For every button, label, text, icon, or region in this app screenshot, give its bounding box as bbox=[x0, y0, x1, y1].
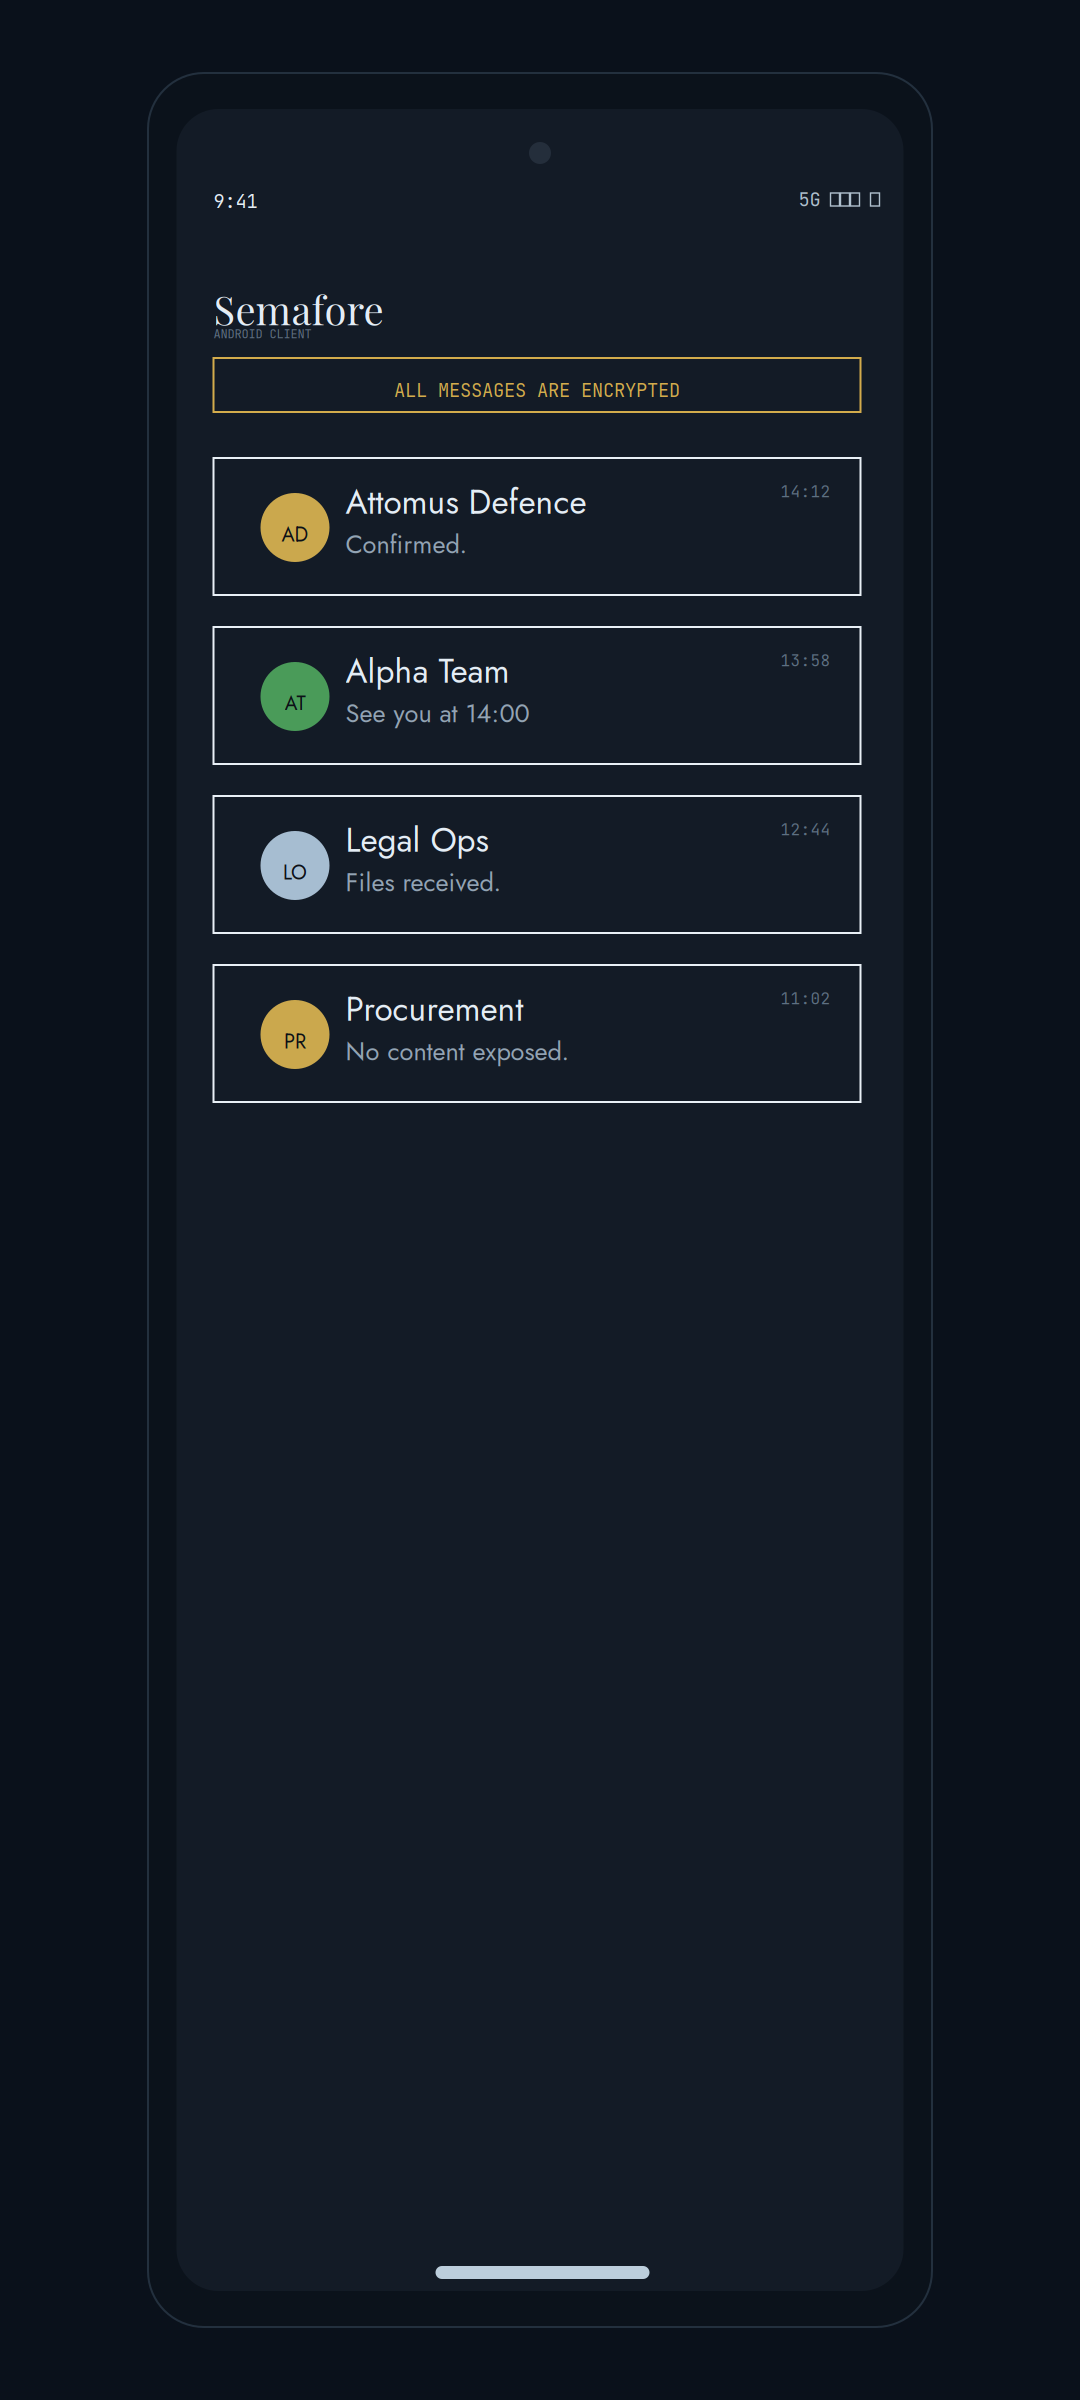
staticText: Attomus Defence bbox=[345, 478, 586, 526]
staticText: Semafore bbox=[213, 282, 383, 335]
button[interactable]: LO bbox=[213, 796, 860, 933]
staticText: ALL MESSAGES ARE ENCRYPTED bbox=[394, 378, 680, 403]
staticText: 11:02 bbox=[780, 988, 830, 1009]
staticText: See you at 14:00 bbox=[345, 695, 529, 732]
staticText: AD bbox=[281, 520, 308, 549]
staticText: 12:44 bbox=[780, 819, 830, 840]
staticText: 5G bbox=[798, 187, 820, 212]
staticText: 13:58 bbox=[780, 650, 830, 671]
button[interactable]: AT bbox=[213, 627, 860, 764]
staticText: 9:41 bbox=[213, 189, 257, 214]
staticText: 14:12 bbox=[780, 481, 830, 502]
button[interactable]: PR bbox=[213, 965, 860, 1102]
button[interactable]: AD bbox=[213, 458, 860, 595]
staticText: Legal Ops bbox=[345, 816, 488, 864]
staticText: Procurement bbox=[345, 985, 523, 1033]
staticText: Alpha Team bbox=[345, 647, 509, 695]
staticText: PR bbox=[284, 1027, 306, 1056]
staticText: Files received. bbox=[345, 864, 501, 901]
staticText: LO bbox=[283, 858, 307, 887]
staticText: ANDROID CLIENT bbox=[213, 326, 311, 342]
staticText: No content exposed. bbox=[345, 1033, 569, 1070]
staticText: Confirmed. bbox=[345, 526, 467, 563]
staticText: AT bbox=[284, 689, 305, 718]
